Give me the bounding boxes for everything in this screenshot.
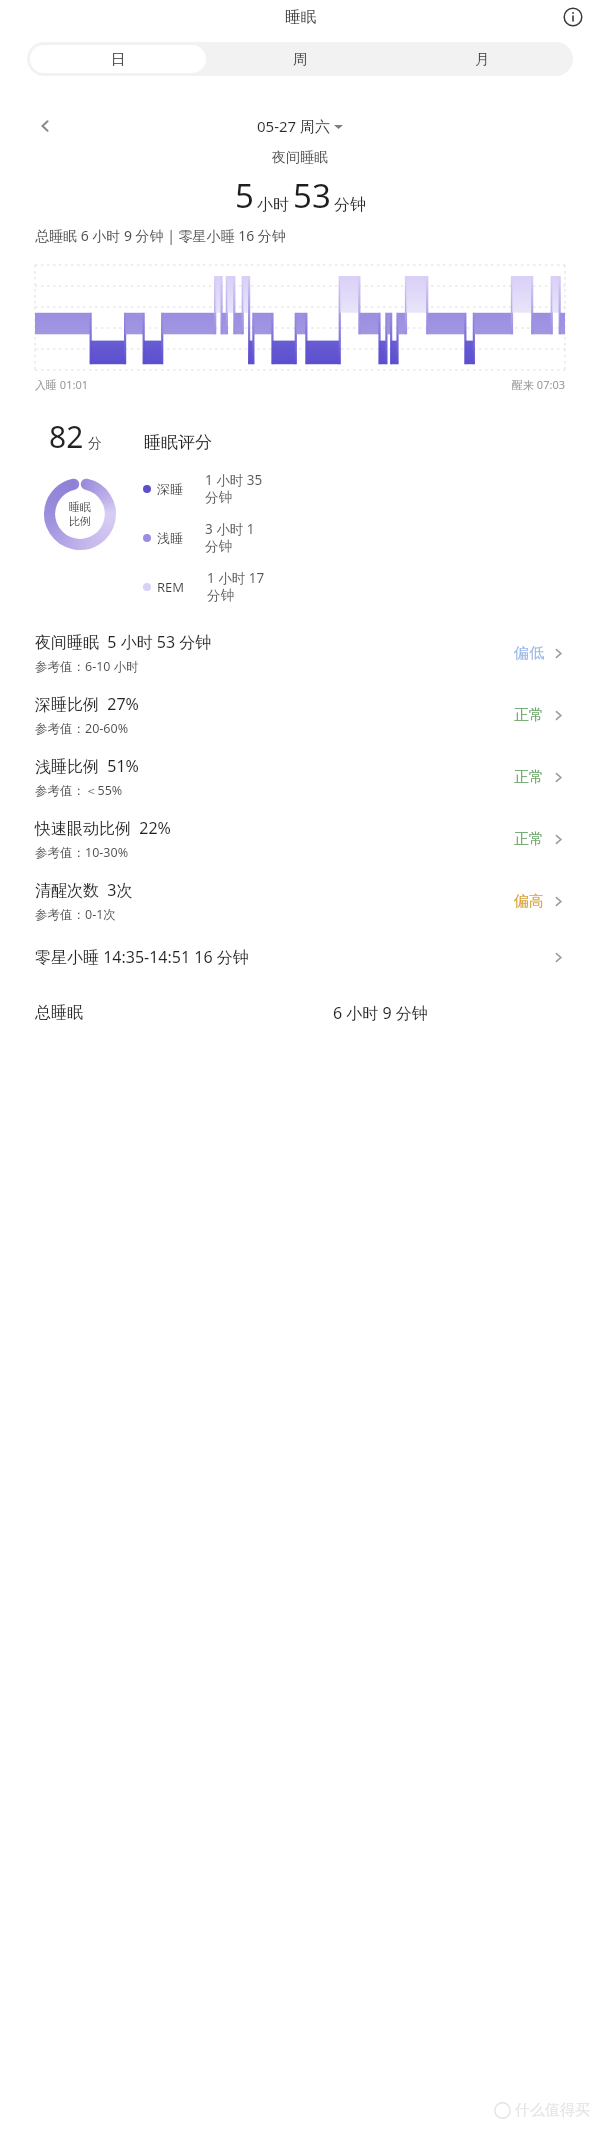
staticText: 82 (49, 416, 84, 457)
staticText: 总睡眠 6 小时 9 分钟 | 零星小睡 16 分钟 (35, 226, 286, 245)
staticText: 醒来 07:03 (512, 377, 565, 392)
staticText: 零星小睡 14:35-14:51 16 分钟 (35, 946, 552, 968)
staticText: 5 (235, 173, 254, 218)
staticText: 分 (88, 435, 102, 453)
staticText: 快速眼动比例 22% (35, 817, 171, 839)
staticText: 小时 (257, 195, 289, 215)
staticText: 浅睡比例 51% (35, 755, 139, 777)
button[interactable]: 月 (394, 45, 570, 73)
button[interactable]: 总睡眠 (21, 998, 579, 1028)
staticText: 清醒次数 3次 (35, 879, 133, 901)
button[interactable]: 05-27 周六 (257, 116, 343, 136)
staticText: 深睡 (157, 481, 183, 497)
staticText: 参考值：20-60% (35, 720, 129, 737)
staticText: 比例 (69, 514, 91, 528)
staticText: 参考值：6-10 小时 (35, 658, 139, 675)
staticText: 夜间睡眠 5 小时 53 分钟 (35, 631, 212, 653)
staticText: 3 小时 1 (205, 520, 255, 538)
staticText: 睡眠 (285, 7, 316, 27)
button[interactable]: 夜间睡眠 5 小时 53 分钟 (21, 622, 579, 684)
button[interactable]: 周 (212, 45, 388, 73)
button[interactable]: 零星小睡 14:35-14:51 16 分钟 (21, 940, 579, 974)
staticText: 分钟 (205, 538, 232, 555)
staticText: 6 小时 9 分钟 (333, 1002, 428, 1024)
staticText: 总睡眠 (35, 1003, 83, 1023)
staticText: 正常 (514, 768, 544, 787)
staticText: 1 小时 35 (205, 471, 263, 489)
staticText: 浅睡 (157, 530, 183, 546)
staticText: 1 小时 17 (207, 569, 265, 587)
button[interactable]: Info (560, 4, 586, 30)
staticText: 正常 (514, 830, 544, 849)
staticText: 正常 (514, 706, 544, 725)
button[interactable]: Previous day (30, 112, 60, 140)
staticText: 05-27 周六 (257, 116, 331, 136)
staticText: 月 (475, 50, 490, 68)
staticText: 偏高 (514, 892, 544, 911)
staticText: 日 (111, 50, 126, 68)
staticText: 分钟 (334, 195, 366, 215)
staticText: 睡眠 (69, 500, 91, 514)
button[interactable]: 日 (30, 45, 206, 73)
staticText: 睡眠评分 (144, 432, 212, 453)
staticText: 分钟 (207, 587, 234, 604)
staticText: 夜间睡眠 (21, 149, 579, 167)
staticText: 偏低 (514, 644, 544, 663)
button[interactable]: 浅睡比例 51% (21, 746, 579, 808)
staticText: 深睡比例 27% (35, 693, 139, 715)
staticText: REM (157, 578, 185, 596)
button[interactable]: 快速眼动比例 22% (21, 808, 579, 870)
staticText: 入睡 01:01 (35, 377, 88, 392)
staticText: 参考值：＜55% (35, 782, 123, 799)
staticText: 什么值得买 (515, 2101, 590, 2120)
button[interactable]: 清醒次数 3次 (21, 870, 579, 932)
button[interactable]: 深睡比例 27% (21, 684, 579, 746)
staticText: 53 (293, 173, 331, 218)
staticText: 参考值：10-30% (35, 844, 129, 861)
staticText: 分钟 (205, 489, 232, 506)
staticText: 参考值：0-1次 (35, 906, 116, 923)
staticText: 周 (293, 50, 308, 68)
